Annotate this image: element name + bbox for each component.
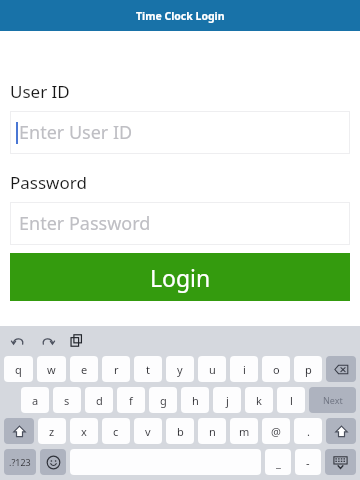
staticText: Time Clock Login (136, 9, 225, 23)
staticText: e (81, 362, 88, 377)
staticText: . (307, 424, 310, 439)
staticText: d (96, 393, 103, 408)
staticText: t (146, 362, 150, 377)
button[interactable]: j (213, 387, 241, 413)
button[interactable]: h (181, 387, 209, 413)
button[interactable]: Copy (66, 330, 86, 350)
staticText: p (305, 362, 312, 377)
staticText: o (273, 362, 280, 377)
staticText: _ (276, 455, 281, 470)
staticText: g (160, 393, 167, 408)
button[interactable]: .?123 (4, 449, 36, 475)
button[interactable]: f (117, 387, 145, 413)
staticText: Next (323, 394, 343, 406)
button[interactable]: Enter User ID (10, 111, 350, 154)
button[interactable]: Enter Password (10, 202, 350, 245)
button[interactable]: Shift (326, 418, 356, 444)
button[interactable]: d (85, 387, 113, 413)
button[interactable]: c (102, 418, 130, 444)
button[interactable]: Hide keyboard (325, 449, 356, 475)
button[interactable]: Emoji (40, 449, 66, 475)
button[interactable]: Shift (4, 418, 34, 444)
button[interactable]: s (53, 387, 81, 413)
button[interactable]: k (245, 387, 273, 413)
staticText: Login (150, 262, 211, 293)
staticText: m (239, 424, 250, 439)
button[interactable]: Redo (37, 330, 57, 350)
button[interactable]: Next (309, 387, 356, 413)
button[interactable]: g (149, 387, 177, 413)
button[interactable]: i (230, 356, 258, 382)
button[interactable]: . (294, 418, 322, 444)
button[interactable]: p (294, 356, 322, 382)
button[interactable]: @ (262, 418, 290, 444)
button[interactable]: y (166, 356, 194, 382)
staticText: v (145, 424, 151, 439)
button[interactable]: n (198, 418, 226, 444)
button[interactable]: q (4, 356, 33, 382)
button[interactable]: e (70, 356, 98, 382)
staticText: b (177, 424, 184, 439)
button[interactable]: Backspace (326, 356, 356, 382)
button[interactable]: _ (265, 449, 291, 475)
staticText: k (256, 393, 262, 408)
button[interactable]: - (295, 449, 321, 475)
button[interactable]: r (102, 356, 130, 382)
staticText: a (32, 393, 39, 408)
button[interactable]: t (134, 356, 162, 382)
button[interactable]: m (230, 418, 258, 444)
button[interactable]: Login (10, 253, 350, 301)
staticText: q (15, 362, 22, 377)
staticText: s (64, 393, 70, 408)
button[interactable]: z (38, 418, 66, 444)
staticText: - (306, 455, 310, 470)
staticText: w (47, 362, 56, 377)
button[interactable]: v (134, 418, 162, 444)
button[interactable]: b (166, 418, 194, 444)
staticText: y (177, 362, 183, 377)
staticText: Password (10, 171, 87, 194)
button[interactable]: w (37, 356, 66, 382)
staticText: Enter User ID (19, 120, 133, 145)
button[interactable]: o (262, 356, 290, 382)
button[interactable]: u (198, 356, 226, 382)
button[interactable]: l (277, 387, 305, 413)
button[interactable]: Undo (8, 330, 28, 350)
staticText: u (209, 362, 216, 377)
staticText: l (290, 393, 293, 408)
staticText: f (129, 393, 133, 408)
staticText: User ID (10, 80, 70, 103)
staticText: i (243, 362, 246, 377)
staticText: j (226, 393, 229, 408)
button[interactable]: x (70, 418, 98, 444)
staticText: c (113, 424, 119, 439)
staticText: x (81, 424, 87, 439)
staticText: r (114, 362, 119, 377)
button[interactable]: a (21, 387, 49, 413)
staticText: @ (271, 424, 281, 439)
staticText: Enter Password (19, 211, 151, 236)
staticText: .?123 (9, 456, 31, 468)
staticText: n (209, 424, 216, 439)
staticText: h (192, 393, 199, 408)
staticText: z (49, 424, 55, 439)
